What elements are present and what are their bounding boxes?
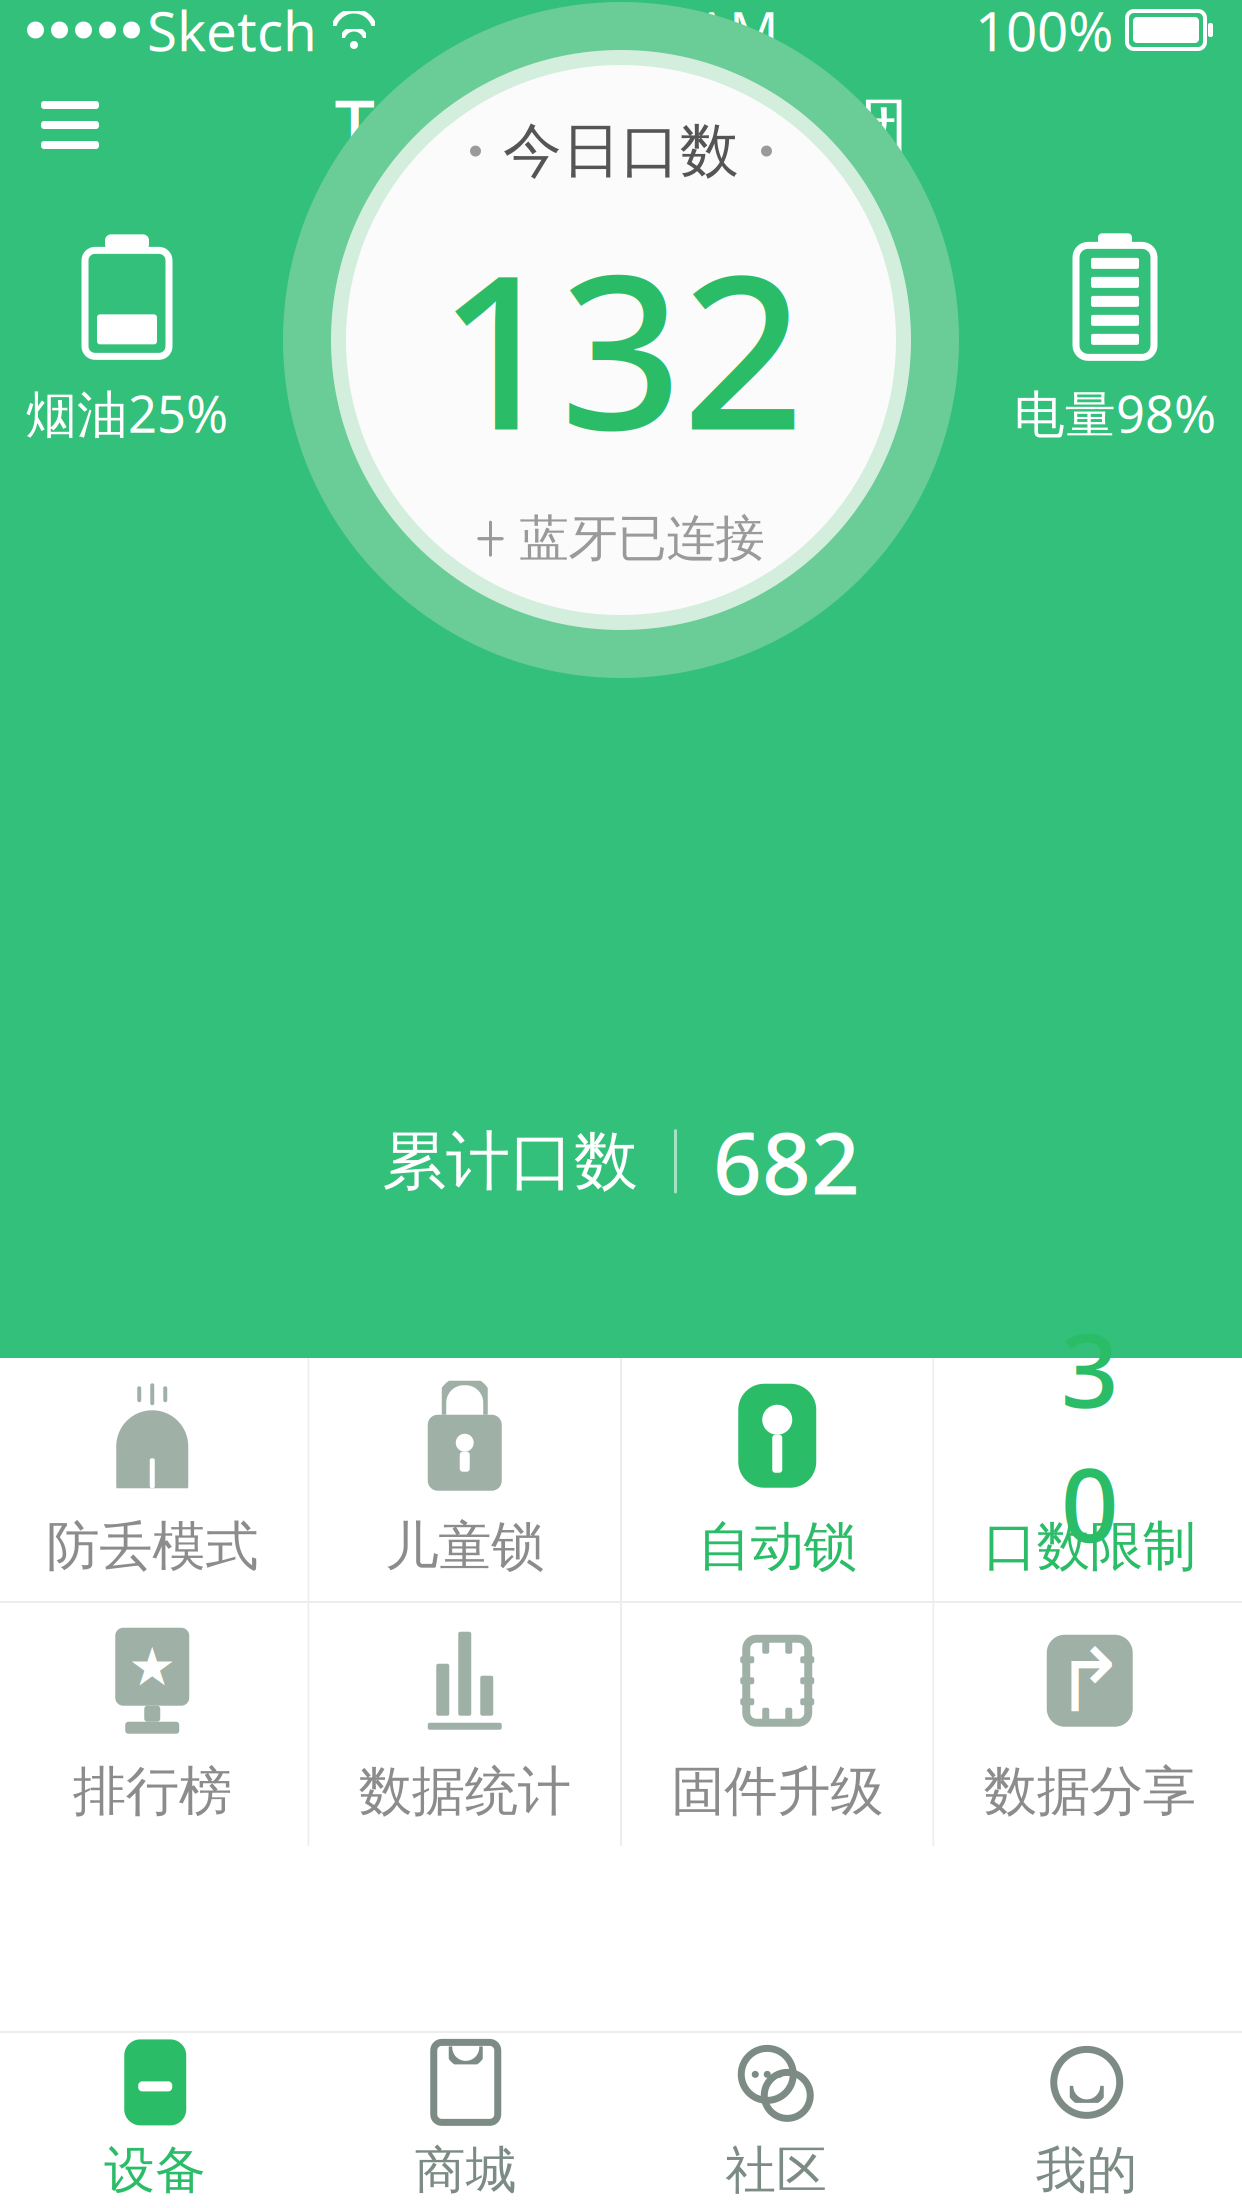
- button[interactable]: 30: [934, 1358, 1242, 1601]
- button[interactable]: 数据统计: [309, 1603, 620, 1846]
- staticText: 30: [1061, 1301, 1119, 1570]
- staticText: ↱: [1053, 1631, 1127, 1731]
- staticText: ★: [128, 1636, 176, 1697]
- staticText: Sketch: [147, 0, 317, 66]
- staticText: Taozai家用电子烟: [334, 77, 907, 173]
- staticText: 固件升级: [671, 1759, 883, 1824]
- button[interactable]: 我的: [931, 2033, 1242, 2208]
- button[interactable]: 社区: [621, 2033, 931, 2208]
- staticText: 数据分享: [984, 1759, 1196, 1824]
- staticText: 682: [713, 1105, 860, 1218]
- button[interactable]: 防丢模式: [0, 1358, 307, 1601]
- button[interactable]: Menu: [15, 70, 125, 180]
- staticText: 电量98%: [1014, 379, 1216, 447]
- staticText: 132: [438, 205, 804, 488]
- button[interactable]: 儿童锁: [309, 1358, 620, 1601]
- button[interactable]: 商城: [310, 2033, 621, 2208]
- staticText: 排行榜: [73, 1759, 232, 1824]
- button[interactable]: ↱: [934, 1603, 1242, 1846]
- staticText: 9:41 AM: [572, 0, 779, 66]
- staticText: 口数限制: [984, 1514, 1196, 1579]
- staticText: 自动锁: [698, 1514, 857, 1579]
- staticText: 数据统计: [359, 1759, 571, 1824]
- staticText: 儿童锁: [385, 1514, 544, 1579]
- button[interactable]: ★: [0, 1603, 307, 1846]
- button[interactable]: 自动锁: [622, 1358, 932, 1601]
- staticText: 今日口数: [503, 115, 739, 187]
- button[interactable]: 设备: [0, 2033, 310, 2208]
- staticText: 烟油25%: [26, 379, 228, 447]
- button[interactable]: 固件升级: [622, 1603, 932, 1846]
- staticText: 商城: [415, 2139, 517, 2202]
- staticText: 设备: [104, 2139, 206, 2202]
- staticText: 100%: [975, 0, 1113, 66]
- staticText: 累计口数: [382, 1122, 638, 1201]
- staticText: 我的: [1036, 2139, 1138, 2202]
- staticText: 蓝牙已连接: [519, 508, 764, 569]
- staticText: 社区: [725, 2139, 827, 2202]
- staticText: 防丢模式: [46, 1514, 258, 1579]
